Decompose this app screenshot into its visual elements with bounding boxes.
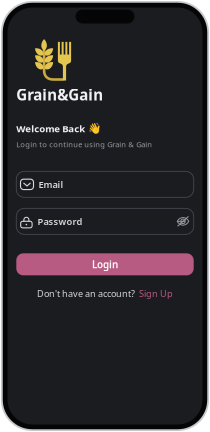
staticText: Email: [38, 178, 63, 191]
staticText: Welcome Back: [16, 122, 85, 135]
staticText: Login: [92, 258, 118, 271]
button[interactable]: Login: [16, 253, 194, 275]
staticText: Don't have an account?: [37, 287, 139, 300]
button[interactable]: Email: [16, 171, 194, 197]
button[interactable]: Password: [16, 208, 194, 234]
button[interactable]: Sign Up: [139, 287, 173, 300]
staticText: Password: [37, 215, 82, 228]
staticText: Grain&Gain: [16, 84, 103, 105]
staticText: Login to continue using Grain & Gain: [16, 139, 152, 149]
staticText: Sign Up: [139, 287, 173, 300]
staticText: 👋: [88, 122, 101, 135]
